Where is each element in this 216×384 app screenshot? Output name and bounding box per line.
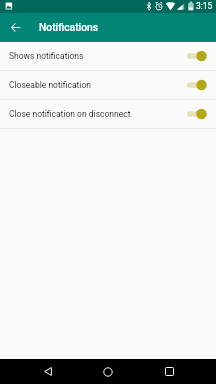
- staticText: 3:15: [196, 1, 213, 11]
- button[interactable]: Home: [95, 359, 121, 384]
- staticText: Shows notifications: [9, 51, 84, 61]
- staticText: Close notification on disconnect: [9, 109, 131, 119]
- button[interactable]: Close notification on disconnect: [0, 100, 216, 128]
- button[interactable]: Shows notifications: [0, 42, 216, 70]
- button[interactable]: Back: [35, 359, 61, 384]
- staticText: Closeable notification: [9, 80, 91, 90]
- button[interactable]: Recent apps: [156, 359, 182, 384]
- button[interactable]: Navigate up: [5, 17, 25, 37]
- staticText: Notifications: [39, 21, 99, 33]
- button[interactable]: Closeable notification: [0, 71, 216, 99]
